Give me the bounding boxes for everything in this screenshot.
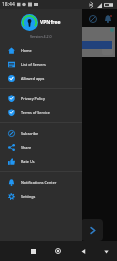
button[interactable]: Back <box>77 245 89 257</box>
staticText: Privacy Policy <box>21 96 45 101</box>
button[interactable]: Blocked <box>86 12 99 25</box>
staticText: Home <box>21 48 32 53</box>
button[interactable]: Recents <box>27 245 39 257</box>
staticText: Allowed apps <box>21 76 45 81</box>
staticText: 18:44 <box>2 1 15 8</box>
button[interactable]: List of Servers <box>0 57 82 71</box>
staticText: Subscribe <box>21 131 39 136</box>
button[interactable]: Subscribe <box>0 126 82 140</box>
button[interactable]: Notifications Center <box>0 175 82 189</box>
button[interactable]: Next <box>81 219 103 241</box>
staticText: List of Servers <box>21 62 46 67</box>
button[interactable]: Home <box>0 43 82 57</box>
button[interactable]: Hide keyboard <box>100 245 112 257</box>
staticText: Version 4.2.0 <box>30 34 52 39</box>
staticText: Share <box>21 145 32 150</box>
staticText: Settings <box>21 194 36 199</box>
button[interactable]: Share <box>0 140 82 154</box>
button[interactable]: Settings <box>0 189 82 203</box>
staticText: Notifications Center <box>21 180 57 185</box>
button[interactable]: Notifications <box>101 12 114 25</box>
staticText: Terms of Service <box>21 110 50 115</box>
button[interactable]: Terms of Service <box>0 105 82 119</box>
button[interactable]: Privacy Policy <box>0 91 82 105</box>
button[interactable]: Rate Us <box>0 154 82 168</box>
button[interactable]: Home <box>52 245 64 257</box>
button[interactable]: Allowed apps <box>0 71 82 85</box>
staticText: VPNfree <box>40 19 61 26</box>
staticText: Rate Us <box>21 159 35 164</box>
